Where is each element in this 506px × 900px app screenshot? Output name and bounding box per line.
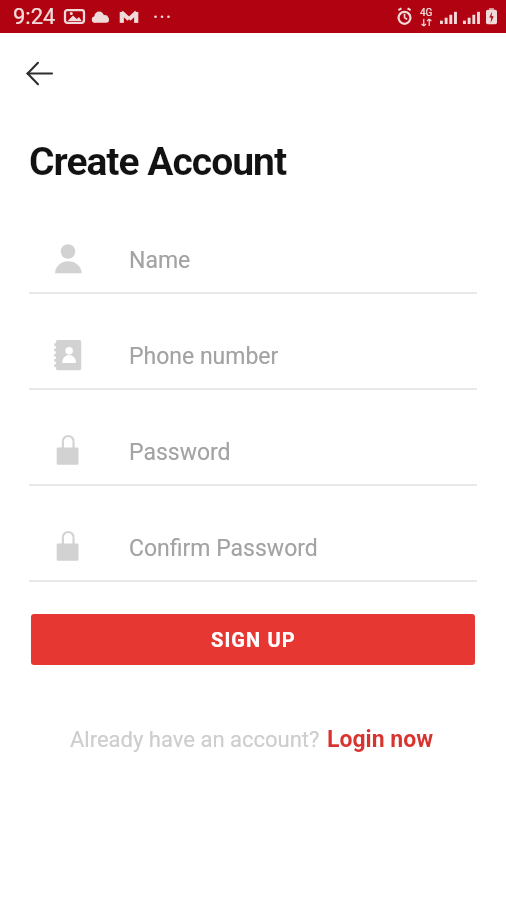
button[interactable]: Password <box>0 405 506 499</box>
staticText: Phone number <box>129 343 279 370</box>
staticText: 4G <box>420 7 433 19</box>
button[interactable]: Phone number <box>0 309 506 403</box>
staticText: Name <box>129 247 191 274</box>
staticText: Password <box>129 439 231 466</box>
staticText: 9:24 <box>13 4 56 30</box>
button[interactable]: Login now <box>325 720 436 759</box>
button[interactable]: Name <box>0 213 506 307</box>
button[interactable]: SIGN UP <box>31 614 475 665</box>
staticText: Create Account <box>29 139 287 185</box>
button[interactable]: Confirm Password <box>0 501 506 595</box>
staticText: SIGN UP <box>211 628 296 651</box>
staticText: Login now <box>327 726 434 753</box>
staticText: Confirm Password <box>129 535 318 562</box>
button[interactable]: Back <box>17 51 62 96</box>
staticText: Already have an account? <box>70 727 325 753</box>
